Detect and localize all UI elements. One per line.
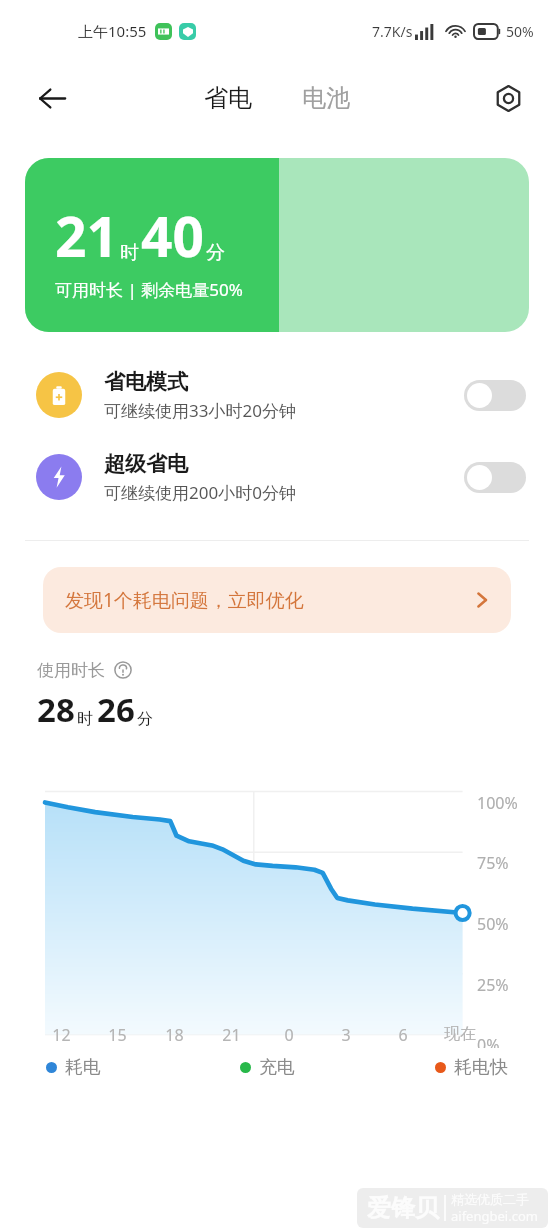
staticText: 可用时长 | 剩余电量50% <box>55 278 243 301</box>
staticText: 精选优质二手 <box>451 1191 529 1207</box>
staticText: 省电模式 <box>104 369 188 395</box>
staticText: 时 <box>77 709 93 729</box>
button[interactable]: 省电模式 toggle <box>464 380 526 411</box>
staticText: 分 <box>206 241 225 265</box>
staticText: 26 <box>97 687 135 732</box>
staticText: 耗电快 <box>454 1056 508 1079</box>
staticText: 3 <box>341 1024 351 1046</box>
staticText: 21 <box>55 198 118 273</box>
staticText: 21 <box>222 1024 241 1046</box>
staticText: 省电 <box>204 83 252 113</box>
button[interactable]: Help <box>112 659 134 681</box>
staticText: 0% <box>477 1034 500 1048</box>
button[interactable]: Settings <box>485 75 531 121</box>
staticText: aifengbei.com <box>451 1207 538 1225</box>
staticText: 0 <box>284 1024 294 1046</box>
staticText: 18 <box>165 1024 184 1046</box>
staticText: 可继续使用200小时0分钟 <box>104 481 296 504</box>
button[interactable]: 超级省电 <box>0 436 554 518</box>
staticText: 15 <box>108 1024 127 1046</box>
button[interactable]: 省电 <box>198 79 258 117</box>
button[interactable]: 省电模式 <box>0 354 554 436</box>
staticText: 50% <box>477 913 509 935</box>
staticText: 耗电 <box>65 1056 101 1079</box>
staticText: 28 <box>37 687 75 732</box>
button[interactable]: 耗电快 <box>431 1052 512 1083</box>
staticText: 50% <box>506 22 534 41</box>
staticText: 12 <box>52 1024 71 1046</box>
staticText: 电池 <box>302 83 350 113</box>
staticText: 100% <box>477 792 518 814</box>
button[interactable]: Back <box>28 74 76 122</box>
staticText: 时 <box>120 241 139 265</box>
staticText: 可继续使用33小时20分钟 <box>104 399 296 422</box>
staticText: 超级省电 <box>104 451 188 477</box>
staticText: 6 <box>398 1024 408 1046</box>
staticText: 现在 <box>444 1024 476 1044</box>
staticText: 分 <box>137 709 153 729</box>
staticText: 7.7K/s <box>372 22 413 41</box>
staticText: 使用时长 <box>37 660 105 681</box>
staticText: 充电 <box>259 1056 295 1079</box>
staticText: 发现1个耗电问题，立即优化 <box>65 587 473 613</box>
button[interactable]: 21 <box>25 158 529 332</box>
staticText: 爱锋贝 <box>367 1193 439 1223</box>
staticText: 上午10:55 <box>78 21 147 41</box>
button[interactable]: 超级省电 toggle <box>464 462 526 493</box>
button[interactable]: 充电 <box>236 1052 299 1083</box>
staticText: 75% <box>477 852 509 874</box>
button[interactable]: 发现1个耗电问题，立即优化 <box>43 567 511 633</box>
button[interactable]: 电池 <box>296 79 356 117</box>
staticText: 25% <box>477 974 509 996</box>
staticText: 40 <box>141 198 204 273</box>
button[interactable]: 耗电 <box>42 1052 105 1083</box>
